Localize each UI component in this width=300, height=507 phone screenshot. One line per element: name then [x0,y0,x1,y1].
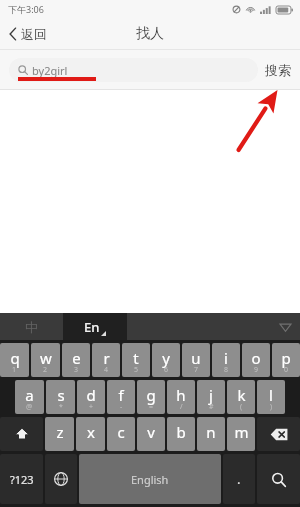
button[interactable]: d [77,380,105,414]
button[interactable]: b [167,417,195,451]
staticText: l [269,385,273,405]
button[interactable]: . [223,454,255,504]
staticText: v [147,422,155,442]
staticText: c [117,422,125,442]
button[interactable]: l [257,380,285,414]
staticText: z [56,422,64,442]
staticText: k [237,385,246,405]
button[interactable]: u [182,343,210,377]
staticText: o [251,348,261,368]
button[interactable]: m [227,417,255,451]
staticText: e [72,348,81,368]
button[interactable]: English [79,454,221,504]
staticText: y [162,348,170,368]
staticText: d [86,385,96,405]
button[interactable]: y [152,343,180,377]
staticText: 9 [254,365,259,375]
staticText: a [25,385,34,405]
staticText: r [103,348,110,368]
button[interactable]: k [227,380,255,414]
button[interactable]: 返回 [0,18,57,50]
staticText: j [209,385,213,405]
staticText: g [146,385,156,405]
button[interactable]: Search [257,454,300,504]
staticText: = [149,402,154,412]
button[interactable]: Shift [0,417,43,451]
button[interactable]: z [45,417,74,451]
button[interactable]: Change language [45,454,77,504]
button[interactable]: En [63,313,127,340]
staticText: - [120,402,123,412]
button[interactable]: x [76,417,105,451]
staticText: m [234,422,249,442]
staticText: h [176,385,186,405]
staticText: 下午3:06 [8,3,44,15]
button[interactable]: 中 [0,313,63,340]
button[interactable]: g [137,380,165,414]
button[interactable]: o [242,343,270,377]
staticText: / [180,402,183,412]
button[interactable]: Backspace [257,417,300,451]
staticText: b [176,422,186,442]
staticText: . [237,470,241,488]
staticText: @ [26,402,33,412]
button[interactable]: v [137,417,165,451]
button[interactable]: c [107,417,135,451]
staticText: t [133,348,139,368]
button[interactable]: e [62,343,90,377]
button[interactable]: 搜索 [265,50,291,90]
staticText: by2girl [32,63,68,78]
button[interactable]: s [46,380,75,414]
staticText: f [118,385,124,405]
staticText: 返回 [21,26,47,42]
staticText: u [191,348,201,368]
staticText: En [84,318,100,336]
staticText: 6 [164,365,169,375]
button[interactable]: by2girl [9,58,258,82]
button[interactable]: i [212,343,240,377]
button[interactable]: ?123 [0,454,43,504]
button[interactable]: q [0,343,29,377]
staticText: 中 [25,319,38,335]
staticText: 1 [12,365,17,375]
staticText: English [131,472,169,487]
staticText: p [281,348,291,368]
staticText: 0 [284,365,289,375]
staticText: 8 [224,365,229,375]
staticText: w [40,348,52,368]
button[interactable]: r [92,343,120,377]
staticText: ?123 [10,472,34,487]
button[interactable]: j [197,380,225,414]
button[interactable]: a [15,380,44,414]
staticText: x [87,422,95,442]
button[interactable]: p [272,343,300,377]
staticText: q [10,348,20,368]
staticText: s [57,385,65,405]
staticText: 7 [194,365,199,375]
staticText: 搜索 [265,62,291,78]
button[interactable]: w [31,343,60,377]
staticText: ( [240,402,243,412]
staticText: + [89,402,94,412]
staticText: # [209,402,214,412]
staticText: 2 [43,365,48,375]
button[interactable]: f [107,380,135,414]
button[interactable]: h [167,380,195,414]
staticText: * [59,402,63,412]
staticText: i [224,348,228,368]
button[interactable]: t [122,343,150,377]
staticText: 5 [134,365,139,375]
staticText: 找人 [136,25,164,43]
staticText: 4 [104,365,109,375]
button[interactable]: n [197,417,225,451]
button[interactable]: Hide keyboard [278,320,292,334]
staticText: 3 [74,365,79,375]
staticText: ) [270,402,273,412]
staticText: n [206,422,216,442]
